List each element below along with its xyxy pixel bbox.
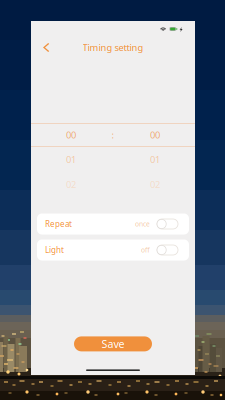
staticText: Repeat <box>45 219 72 229</box>
staticText: Save <box>101 337 124 351</box>
button[interactable]: Back <box>31 37 57 58</box>
staticText: 01 <box>66 153 76 166</box>
staticText: 00 <box>150 129 160 141</box>
button[interactable]: Save <box>74 336 152 351</box>
staticText: Light <box>45 245 64 255</box>
staticText: off <box>141 246 150 254</box>
button[interactable]: Repeat <box>31 213 195 234</box>
staticText: 01 <box>150 153 160 166</box>
button[interactable]: Light <box>31 239 195 260</box>
staticText: 02 <box>150 178 160 191</box>
staticText: once <box>135 220 150 228</box>
staticText: 02 <box>66 178 76 191</box>
staticText: : <box>111 129 114 141</box>
staticText: Timing setting <box>82 41 143 54</box>
staticText: 00 <box>66 129 76 141</box>
